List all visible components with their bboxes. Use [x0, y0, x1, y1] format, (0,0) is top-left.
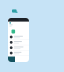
button[interactable]	[8, 34, 29, 40]
button[interactable]	[8, 45, 29, 50]
button[interactable]	[8, 40, 29, 45]
button[interactable]: Now playing	[8, 56, 15, 62]
button[interactable]: App logo	[12, 9, 18, 13]
button[interactable]	[8, 50, 29, 56]
